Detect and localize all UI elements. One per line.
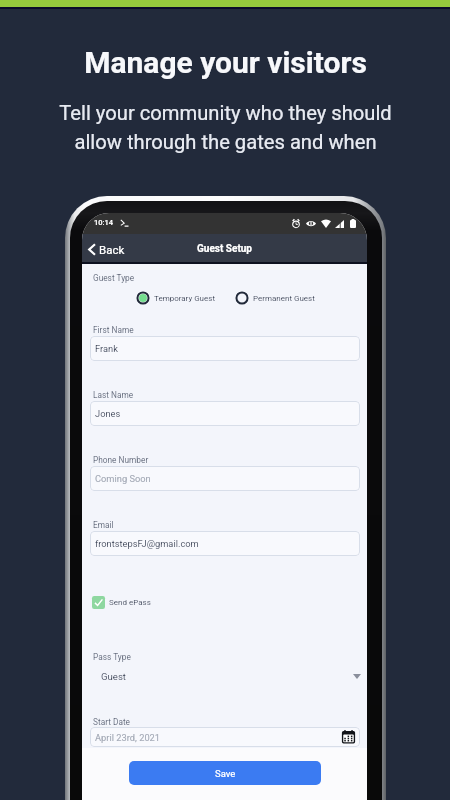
button[interactable]: Send ePass <box>92 596 151 609</box>
staticText: Back <box>99 243 125 256</box>
staticText: Guest Type <box>93 273 135 283</box>
button[interactable]: Frank <box>90 336 360 361</box>
staticText: Frank <box>95 343 118 354</box>
button[interactable]: frontstepsFJ@gmail.com <box>90 531 360 556</box>
staticText: Permanent Guest <box>253 294 315 303</box>
staticText: Email <box>93 520 114 530</box>
staticText: Jones <box>95 408 121 419</box>
button[interactable]: Coming Soon <box>90 466 360 491</box>
staticText: April 23rd, 2021 <box>95 732 161 743</box>
staticText: Tell your community who they should allo… <box>59 101 392 154</box>
staticText: Save <box>215 768 236 779</box>
button[interactable]: Back <box>82 234 133 264</box>
button[interactable]: Permanent Guest <box>235 291 315 305</box>
button[interactable]: Temporary Guest <box>136 291 216 305</box>
staticText: 10:14 <box>94 218 114 227</box>
button[interactable]: April 23rd, 2021 <box>90 727 360 747</box>
staticText: Last Name <box>93 390 134 400</box>
staticText: Send ePass <box>109 598 151 607</box>
button[interactable]: Jones <box>90 401 360 426</box>
staticText: Guest <box>101 671 127 682</box>
button[interactable]: Pick date <box>341 730 356 744</box>
staticText: Phone Number <box>93 455 149 465</box>
staticText: Start Date <box>93 717 131 727</box>
staticText: Pass Type <box>93 652 131 662</box>
staticText: First Name <box>93 325 134 335</box>
staticText: Manage your visitors <box>84 45 367 80</box>
staticText: frontstepsFJ@gmail.com <box>95 538 199 549</box>
staticText: Guest Setup <box>197 243 252 255</box>
button[interactable]: Save <box>129 761 321 785</box>
button[interactable]: Guest <box>82 666 367 686</box>
staticText: Coming Soon <box>95 473 151 484</box>
staticText: Temporary Guest <box>154 294 216 303</box>
